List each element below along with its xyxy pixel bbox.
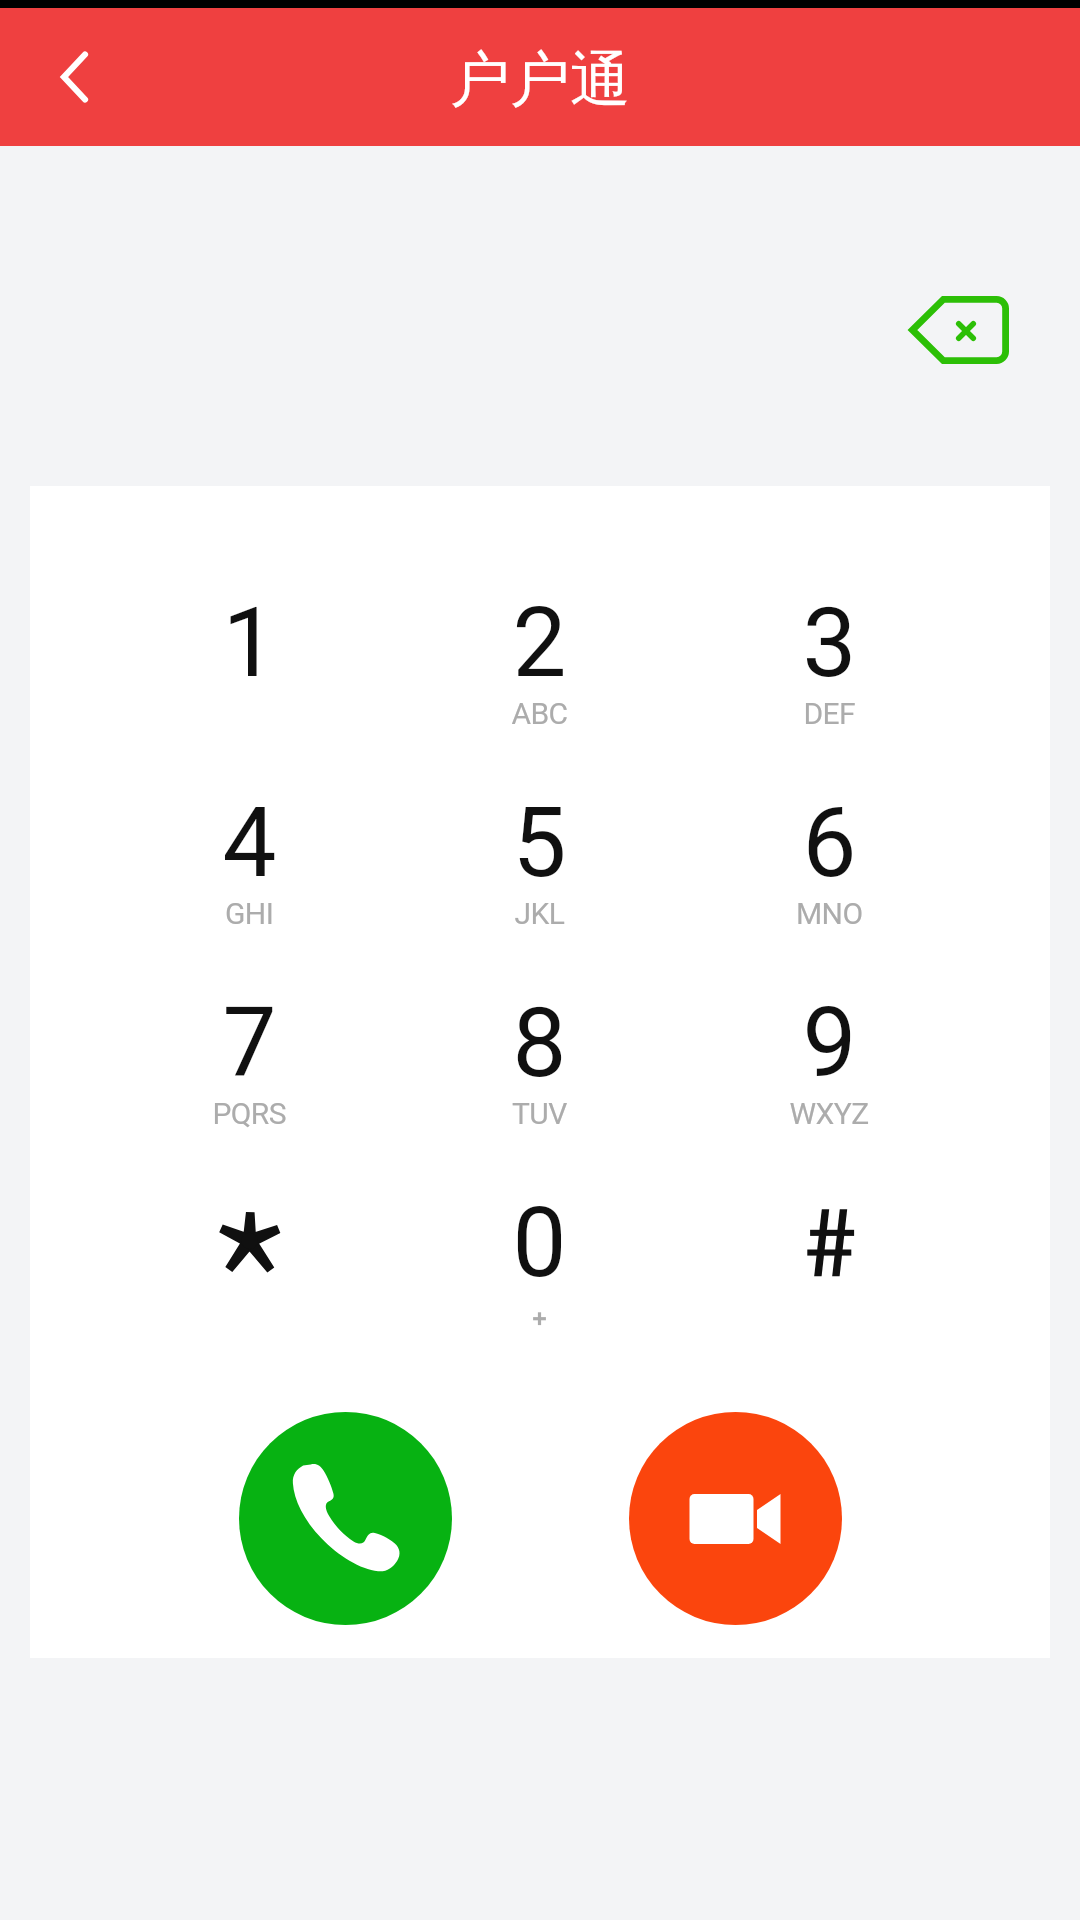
button[interactable]: 0 xyxy=(395,1096,685,1286)
button[interactable]: Video call xyxy=(629,1412,842,1625)
button[interactable]: Backspace xyxy=(889,278,1029,382)
button[interactable]: 1 xyxy=(105,496,395,686)
button[interactable]: 5 xyxy=(395,696,685,886)
button[interactable]: 6 xyxy=(685,696,975,886)
button[interactable]: 2 xyxy=(395,496,685,686)
button[interactable]: 3 xyxy=(685,496,975,686)
button[interactable]: star xyxy=(105,1096,395,1286)
button[interactable]: 8 xyxy=(395,896,685,1086)
button[interactable]: Back xyxy=(25,22,125,132)
button[interactable]: 4 xyxy=(105,696,395,886)
button[interactable]: pound xyxy=(685,1096,975,1286)
button[interactable]: Call xyxy=(239,1412,452,1625)
button[interactable]: 9 xyxy=(685,896,975,1086)
button[interactable]: 7 xyxy=(105,896,395,1086)
